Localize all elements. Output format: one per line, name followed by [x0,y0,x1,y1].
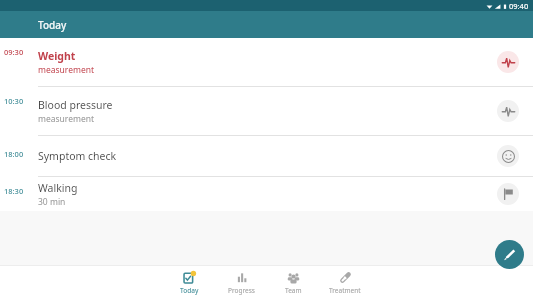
staticText: 09:40 [509,1,529,11]
staticText: Blood pressure [38,98,113,112]
staticText: Today [38,18,67,32]
button[interactable]: Team [267,266,319,300]
button[interactable]: Today [163,266,215,300]
button[interactable]: Activity [497,183,519,205]
button[interactable]: Blood pressure measurement [497,100,519,122]
staticText: Weight [38,49,76,63]
staticText: measurement [38,113,95,125]
staticText: measurement [38,64,95,76]
staticText: 18:00 [4,149,24,159]
staticText: Team [285,286,302,295]
button[interactable]: 10:30 [0,87,533,135]
button[interactable]: 09:30 [0,38,533,86]
button[interactable]: Add entry [495,240,524,269]
staticText: Walking [38,181,78,195]
staticText: Progress [228,286,255,295]
staticText: 10:30 [4,96,24,106]
staticText: Treatment [329,286,361,295]
button[interactable]: Symptom check [497,145,519,167]
button[interactable]: Weight measurement [497,51,519,73]
button[interactable]: 18:30 [0,177,533,211]
button[interactable]: Treatment [319,266,371,300]
staticText: 09:30 [4,47,24,57]
staticText: 18:30 [4,186,24,196]
staticText: Symptom check [38,149,117,163]
button[interactable]: 18:00 [0,136,533,176]
staticText: 30 min [38,196,66,208]
staticText: Today [180,286,199,295]
button[interactable]: Progress [215,266,267,300]
